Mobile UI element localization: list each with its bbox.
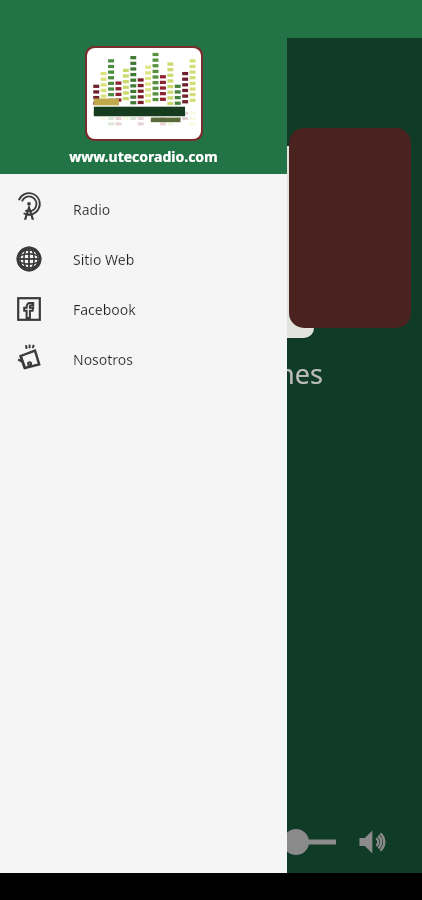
- staticText: Radio: [73, 200, 111, 219]
- button[interactable]: Nosotros: [0, 334, 287, 384]
- staticText: www.utecoradio.com: [69, 147, 218, 166]
- staticText: nes: [278, 355, 323, 392]
- staticText: Nosotros: [73, 350, 134, 369]
- button[interactable]: Radio: [0, 184, 287, 234]
- button[interactable]: [289, 128, 411, 328]
- staticText: Sitio Web: [73, 250, 135, 269]
- button[interactable]: Volume slider: [280, 821, 342, 863]
- staticText: Facebook: [73, 300, 136, 319]
- button[interactable]: Facebook: [0, 284, 287, 334]
- button[interactable]: Sitio Web: [0, 234, 287, 284]
- button[interactable]: Speaker volume: [354, 825, 388, 859]
